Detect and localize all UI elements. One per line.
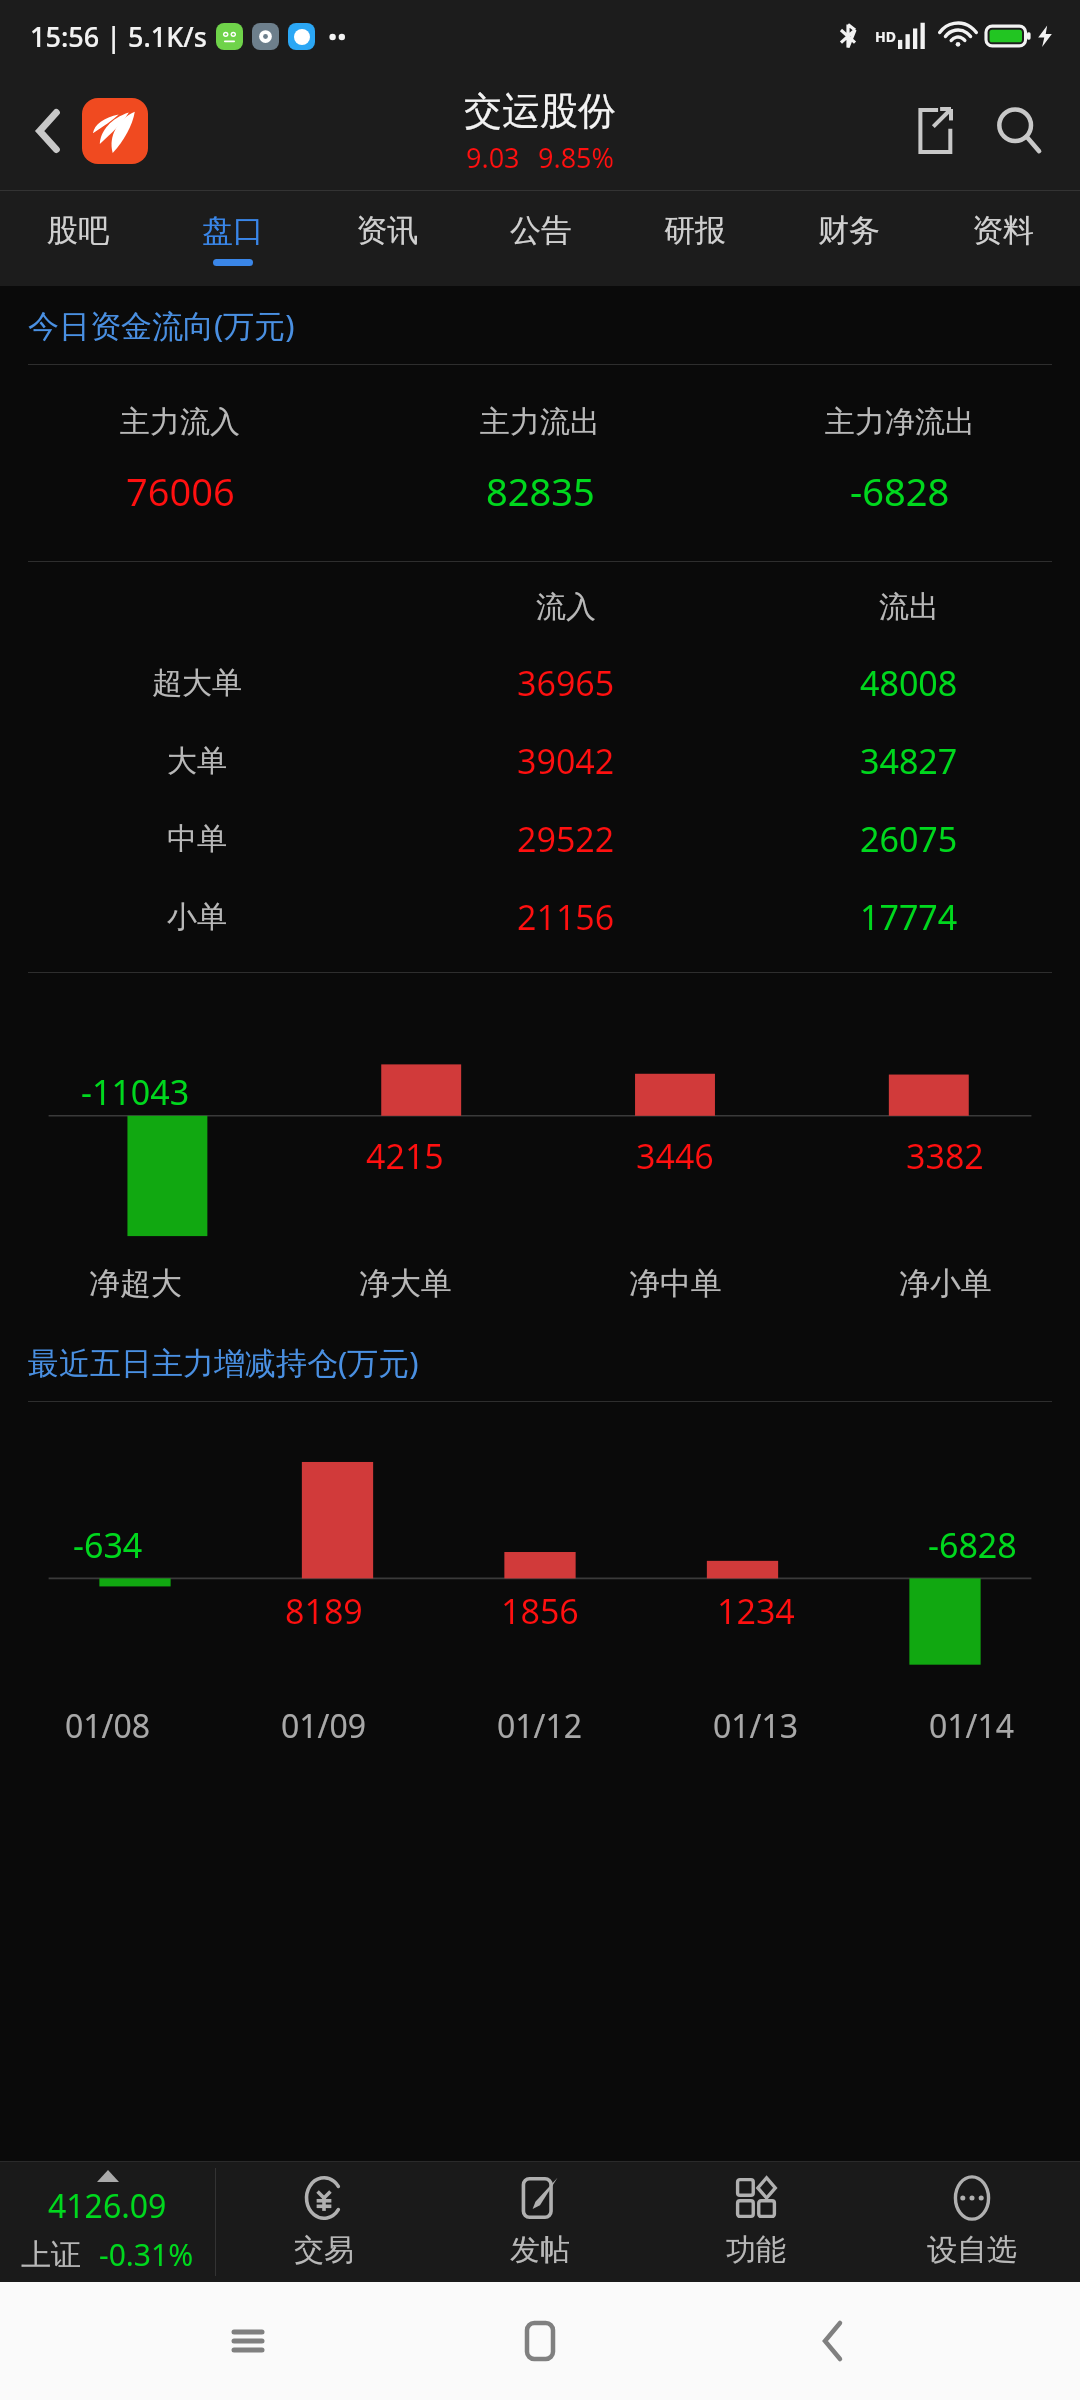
staticText: 公告 (510, 211, 572, 250)
staticText: 小单 (167, 898, 227, 936)
staticText: 1856 (501, 1588, 579, 1634)
staticText: 1234 (717, 1588, 795, 1634)
button[interactable]: 公告 (464, 191, 618, 286)
button[interactable]: 交易 (216, 2162, 432, 2282)
staticText: -11043 (81, 1069, 190, 1115)
button[interactable]: 研报 (618, 191, 772, 286)
staticText: 今日资金流向(万元) (28, 304, 295, 346)
staticText: 研报 (664, 211, 726, 250)
staticText: 主力流入 (120, 403, 240, 441)
staticText: 48008 (860, 660, 958, 706)
staticText: 设自选 (927, 2231, 1017, 2269)
button[interactable]: 资讯 (310, 191, 464, 286)
staticText: 盘口 (202, 211, 264, 250)
staticText: 交易 (294, 2231, 354, 2269)
staticText: 净大单 (359, 1264, 452, 1303)
staticText: 01/12 (497, 1704, 583, 1748)
staticText: 21156 (517, 894, 615, 940)
staticText: 资料 (972, 211, 1034, 250)
button[interactable]: App logo (82, 98, 148, 164)
staticText: 01/09 (281, 1704, 367, 1748)
staticText: 26075 (860, 816, 958, 862)
staticText: 净小单 (899, 1264, 992, 1303)
staticText: HD (875, 27, 896, 46)
button[interactable]: 功能 (648, 2162, 864, 2282)
button[interactable]: 发帖 (432, 2162, 648, 2282)
staticText: 资讯 (356, 211, 418, 250)
staticText: 中单 (167, 820, 227, 858)
staticText: 01/08 (65, 1704, 151, 1748)
staticText: 交运股份 (464, 87, 616, 135)
button[interactable]: 盘口 (155, 191, 310, 286)
staticText: -634 (73, 1522, 143, 1568)
button[interactable]: Back (18, 101, 78, 161)
staticText: 3382 (906, 1133, 984, 1179)
staticText: -6828 (850, 465, 950, 517)
staticText: 股吧 (47, 211, 109, 250)
staticText: 上证 (21, 2236, 81, 2274)
staticText: 36965 (517, 660, 615, 706)
button[interactable]: Share (898, 95, 970, 167)
staticText: 82835 (486, 465, 595, 517)
staticText: 发帖 (510, 2231, 570, 2269)
button[interactable]: 财务 (772, 191, 926, 286)
button[interactable]: 4126.09 (0, 2162, 215, 2282)
staticText: 34827 (860, 738, 958, 784)
staticText: 流入 (536, 588, 596, 626)
staticText: 29522 (517, 816, 615, 862)
staticText: 8189 (285, 1588, 363, 1634)
staticText: 流出 (879, 588, 939, 626)
staticText: -0.31% (99, 2234, 194, 2275)
staticText: 功能 (726, 2231, 786, 2269)
button[interactable]: Home (495, 2296, 585, 2386)
staticText: 15:56 | 5.1K/s (30, 18, 207, 55)
button[interactable]: 股吧 (0, 191, 155, 286)
staticText: 17774 (860, 894, 958, 940)
staticText: 01/13 (713, 1704, 799, 1748)
staticText: 76006 (126, 465, 235, 517)
staticText: 39042 (517, 738, 615, 784)
staticText: 主力流出 (480, 403, 600, 441)
staticText: 超大单 (152, 664, 242, 702)
staticText: 4126.09 (48, 2184, 167, 2228)
staticText: 净中单 (629, 1264, 722, 1303)
staticText: 4215 (366, 1133, 444, 1179)
staticText: 净超大 (89, 1264, 182, 1303)
staticText: 3446 (636, 1133, 714, 1179)
button[interactable]: Recent apps (203, 2296, 293, 2386)
staticText: 大单 (167, 742, 227, 780)
staticText: 01/14 (929, 1704, 1015, 1748)
button[interactable]: Search (980, 92, 1058, 170)
staticText: 财务 (818, 211, 880, 250)
staticText: -6828 (928, 1522, 1017, 1568)
staticText: 主力净流出 (825, 403, 975, 441)
staticText: 9.03 (466, 139, 520, 176)
staticText: 最近五日主力增减持仓(万元) (28, 1341, 419, 1383)
staticText: 9.85% (538, 139, 615, 176)
button[interactable]: Back (788, 2296, 878, 2386)
button[interactable]: 设自选 (864, 2162, 1080, 2282)
button[interactable]: 资料 (926, 191, 1080, 286)
